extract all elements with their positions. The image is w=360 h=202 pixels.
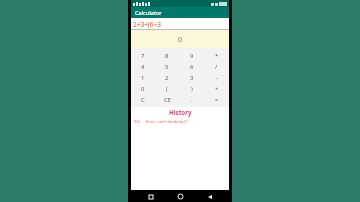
button[interactable]: 5	[155, 61, 179, 72]
button[interactable]: 9	[179, 50, 204, 61]
staticText: 3	[190, 74, 194, 82]
button[interactable]: 1	[131, 72, 155, 83]
staticText: Error : can't divide by 0 !	[146, 119, 189, 124]
button[interactable]: 0	[131, 30, 229, 48]
button[interactable]: (	[155, 83, 179, 94]
staticText: 7	[141, 52, 145, 60]
staticText: 6	[190, 63, 194, 71]
staticText: (	[166, 85, 168, 93]
staticText: 5	[165, 63, 169, 71]
button[interactable]: 8	[155, 50, 179, 61]
staticText: +	[215, 85, 219, 93]
staticText: 3/0	[134, 119, 146, 124]
button[interactable]: 7	[131, 50, 155, 61]
staticText: 1	[141, 74, 145, 82]
staticText: C	[141, 96, 145, 104]
staticText: /	[215, 63, 218, 71]
staticText: 0	[141, 85, 145, 93]
button[interactable]: .	[179, 94, 204, 105]
staticText: -	[216, 74, 218, 82]
staticText: 4	[141, 63, 145, 71]
button[interactable]: Back	[205, 192, 214, 201]
staticText: 2+3+(6÷3	[133, 20, 161, 29]
staticText: 0	[178, 34, 183, 44]
button[interactable]: /	[204, 61, 229, 72]
staticText: 2	[165, 74, 169, 82]
button[interactable]: 3/0	[131, 117, 229, 125]
staticText: .	[191, 96, 193, 104]
staticText: History	[169, 108, 192, 116]
button[interactable]: *	[204, 50, 229, 61]
staticText: CE	[164, 96, 171, 104]
button[interactable]: Calculator	[131, 7, 229, 18]
staticText: 8	[165, 52, 169, 60]
button[interactable]: 0	[131, 83, 155, 94]
button[interactable]: C	[131, 94, 155, 105]
staticText: Calculator	[135, 9, 162, 16]
button[interactable]: =	[204, 94, 229, 105]
button[interactable]: Home	[176, 192, 185, 201]
button[interactable]: 6	[179, 61, 204, 72]
button[interactable]: History	[131, 107, 229, 117]
button[interactable]: 2	[155, 72, 179, 83]
button[interactable]: CE	[155, 94, 179, 105]
staticText: *	[215, 52, 219, 60]
button[interactable]: +	[204, 83, 229, 94]
staticText: 9	[190, 52, 194, 60]
staticText: =	[215, 96, 219, 104]
button[interactable]: 2+3+(6÷3	[131, 18, 229, 30]
staticText: )	[191, 85, 193, 93]
button[interactable]: Recent apps	[146, 192, 155, 201]
button[interactable]: -	[204, 72, 229, 83]
button[interactable]: 3	[179, 72, 204, 83]
button[interactable]: 4	[131, 61, 155, 72]
button[interactable]: )	[179, 83, 204, 94]
